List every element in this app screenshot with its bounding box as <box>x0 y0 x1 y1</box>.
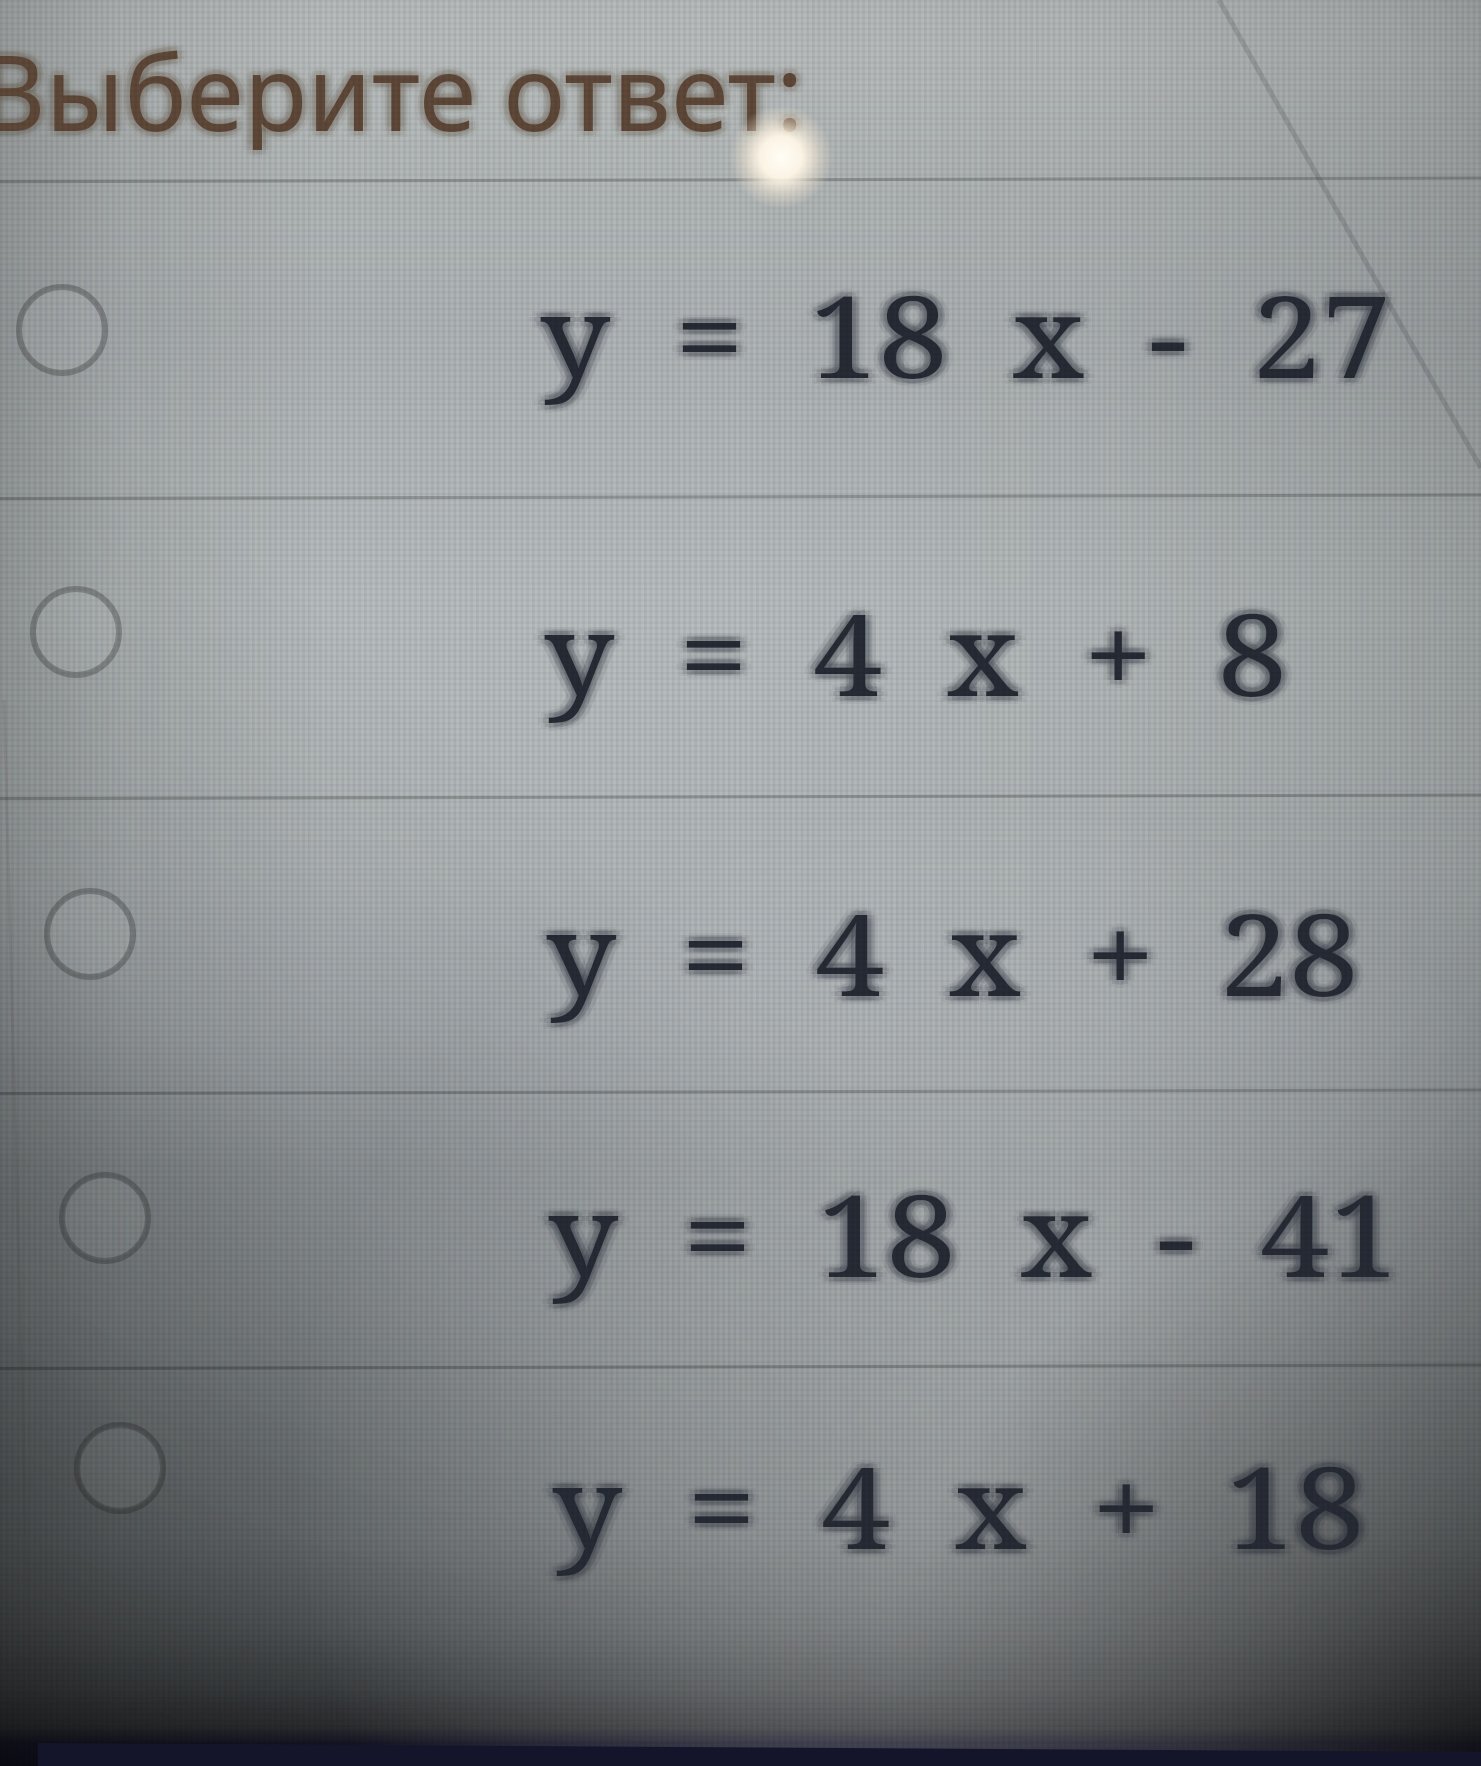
staticText: Выберите ответ: <box>0 26 797 156</box>
staticText: y = 4 x + 28 <box>538 880 1351 1035</box>
staticText: y = 4 x + 28 <box>546 866 1359 1021</box>
staticText: y = 18 x - 41 <box>556 1149 1407 1304</box>
staticText: Выберите ответ: <box>0 20 814 150</box>
button[interactable]: Answer option 1 <box>0 178 1481 495</box>
staticText: y = 4 x + 28 <box>546 869 1359 1024</box>
staticText: y = 18 x - 41 <box>540 1149 1392 1304</box>
staticText: y = 4 x + 8 <box>544 579 1287 734</box>
button[interactable]: Answer option 4 <box>0 1090 1481 1365</box>
staticText: y = 4 x + 8 <box>536 568 1280 723</box>
staticText: y = 4 x + 18 <box>556 1431 1369 1586</box>
staticText: y = 4 x + 8 <box>537 574 1281 729</box>
staticText: y = 18 x - 41 <box>554 1155 1406 1310</box>
staticText: y = 4 x + 18 <box>552 1432 1365 1587</box>
staticText: y = 4 x + 8 <box>550 574 1294 729</box>
staticText: Выберите ответ: <box>0 20 804 150</box>
staticText: y = 4 x + 8 <box>548 578 1292 733</box>
staticText: y = 18 x - 41 <box>540 1161 1392 1316</box>
staticText: y = 18 x - 27 <box>548 250 1399 405</box>
staticText: Выберите ответ: <box>0 28 804 158</box>
staticText: y = 4 x + 28 <box>550 870 1363 1025</box>
staticText: y = 4 x + 8 <box>544 582 1287 737</box>
staticText: y = 18 x - 41 <box>548 1147 1399 1302</box>
staticText: y = 4 x + 28 <box>546 882 1359 1037</box>
staticText: Выберите ответ: <box>0 15 804 145</box>
staticText: Выберите ответ: <box>0 26 811 156</box>
staticText: y = 18 x - 41 <box>556 1161 1407 1316</box>
button[interactable]: Answer option 5 <box>0 1365 1481 1742</box>
staticText: y = 4 x + 18 <box>552 1435 1365 1590</box>
staticText: y = 18 x - 27 <box>536 260 1387 415</box>
staticText: y = 4 x + 18 <box>548 1431 1361 1586</box>
staticText: y = 18 x - 41 <box>552 1159 1404 1314</box>
staticText: y = 4 x + 28 <box>554 880 1367 1035</box>
staticText: y = 18 x - 27 <box>540 256 1391 411</box>
staticText: Выберите ответ: <box>0 24 800 154</box>
staticText: y = 4 x + 8 <box>544 569 1287 724</box>
staticText: y = 4 x + 8 <box>536 580 1280 735</box>
button[interactable]: Answer option 2 <box>0 495 1481 795</box>
staticText: y = 4 x + 18 <box>552 1422 1365 1577</box>
staticText: y = 4 x + 18 <box>545 1427 1359 1582</box>
staticText: y = 4 x + 8 <box>544 574 1287 729</box>
staticText: y = 4 x + 18 <box>552 1427 1365 1582</box>
staticText: y = 18 x - 41 <box>548 1163 1399 1318</box>
staticText: y = 18 x - 41 <box>552 1151 1404 1306</box>
staticText: y = 4 x + 18 <box>544 1433 1357 1588</box>
staticText: y = 4 x + 28 <box>552 874 1366 1029</box>
staticText: y = 18 x - 41 <box>548 1150 1399 1305</box>
staticText: y = 4 x + 18 <box>556 1423 1369 1578</box>
staticText: y = 4 x + 28 <box>546 879 1359 1034</box>
staticText: y = 18 x - 27 <box>540 261 1391 416</box>
staticText: y = 4 x + 28 <box>542 878 1355 1033</box>
staticText: y = 4 x + 28 <box>557 874 1370 1029</box>
staticText: y = 4 x + 28 <box>535 874 1348 1029</box>
staticText: y = 18 x - 41 <box>548 1155 1399 1310</box>
staticText: y = 18 x - 27 <box>546 256 1398 411</box>
staticText: y = 18 x - 27 <box>532 262 1384 417</box>
staticText: y = 4 x + 8 <box>540 570 1283 725</box>
staticText: Выберите ответ: <box>0 20 810 150</box>
staticText: y = 18 x - 27 <box>529 256 1380 411</box>
staticText: y = 4 x + 28 <box>538 868 1351 1023</box>
button[interactable]: Answer option 3 <box>0 795 1481 1090</box>
staticText: y = 4 x + 18 <box>541 1427 1354 1582</box>
staticText: y = 18 x - 27 <box>536 252 1387 407</box>
staticText: y = 18 x - 41 <box>541 1155 1393 1310</box>
staticText: Выберите ответ: <box>0 14 797 144</box>
staticText: y = 18 x - 41 <box>544 1159 1395 1314</box>
staticText: y = 4 x + 8 <box>555 574 1298 729</box>
staticText: Выберите ответ: <box>0 14 811 144</box>
staticText: y = 4 x + 18 <box>560 1433 1373 1588</box>
staticText: y = 4 x + 18 <box>563 1427 1376 1582</box>
staticText: y = 18 x - 27 <box>548 262 1399 417</box>
staticText: y = 18 x - 41 <box>544 1151 1395 1306</box>
staticText: y = 18 x - 27 <box>540 264 1391 419</box>
staticText: y = 18 x - 41 <box>537 1155 1388 1310</box>
staticText: y = 18 x - 27 <box>540 248 1391 403</box>
staticText: y = 4 x + 18 <box>548 1423 1361 1578</box>
staticText: y = 18 x - 41 <box>548 1160 1399 1315</box>
staticText: y = 4 x + 28 <box>542 870 1355 1025</box>
staticText: y = 18 x - 27 <box>544 252 1396 407</box>
staticText: y = 18 x - 27 <box>532 250 1384 405</box>
staticText: Выберите ответ: <box>0 20 794 150</box>
staticText: y = 4 x + 18 <box>558 1427 1372 1582</box>
staticText: Выберите ответ: <box>0 25 804 155</box>
staticText: Выберите ответ: <box>0 12 804 142</box>
staticText: y = 4 x + 8 <box>540 578 1283 733</box>
staticText: y = 4 x + 8 <box>544 566 1287 721</box>
staticText: y = 18 x - 41 <box>559 1155 1410 1310</box>
staticText: y = 4 x + 8 <box>533 574 1276 729</box>
staticText: y = 4 x + 18 <box>552 1419 1365 1574</box>
staticText: y = 4 x + 28 <box>550 878 1363 1033</box>
staticText: y = 18 x - 27 <box>540 251 1391 406</box>
staticText: Выберите ответ: <box>0 20 798 150</box>
staticText: y = 4 x + 28 <box>539 874 1353 1029</box>
staticText: Выберите ответ: <box>0 16 800 146</box>
staticText: y = 4 x + 8 <box>548 570 1292 725</box>
staticText: y = 4 x + 8 <box>552 580 1295 735</box>
staticText: y = 4 x + 8 <box>552 568 1295 723</box>
button[interactable]: Выберите ответ: <box>0 20 1178 150</box>
staticText: y = 18 x - 27 <box>551 256 1402 411</box>
